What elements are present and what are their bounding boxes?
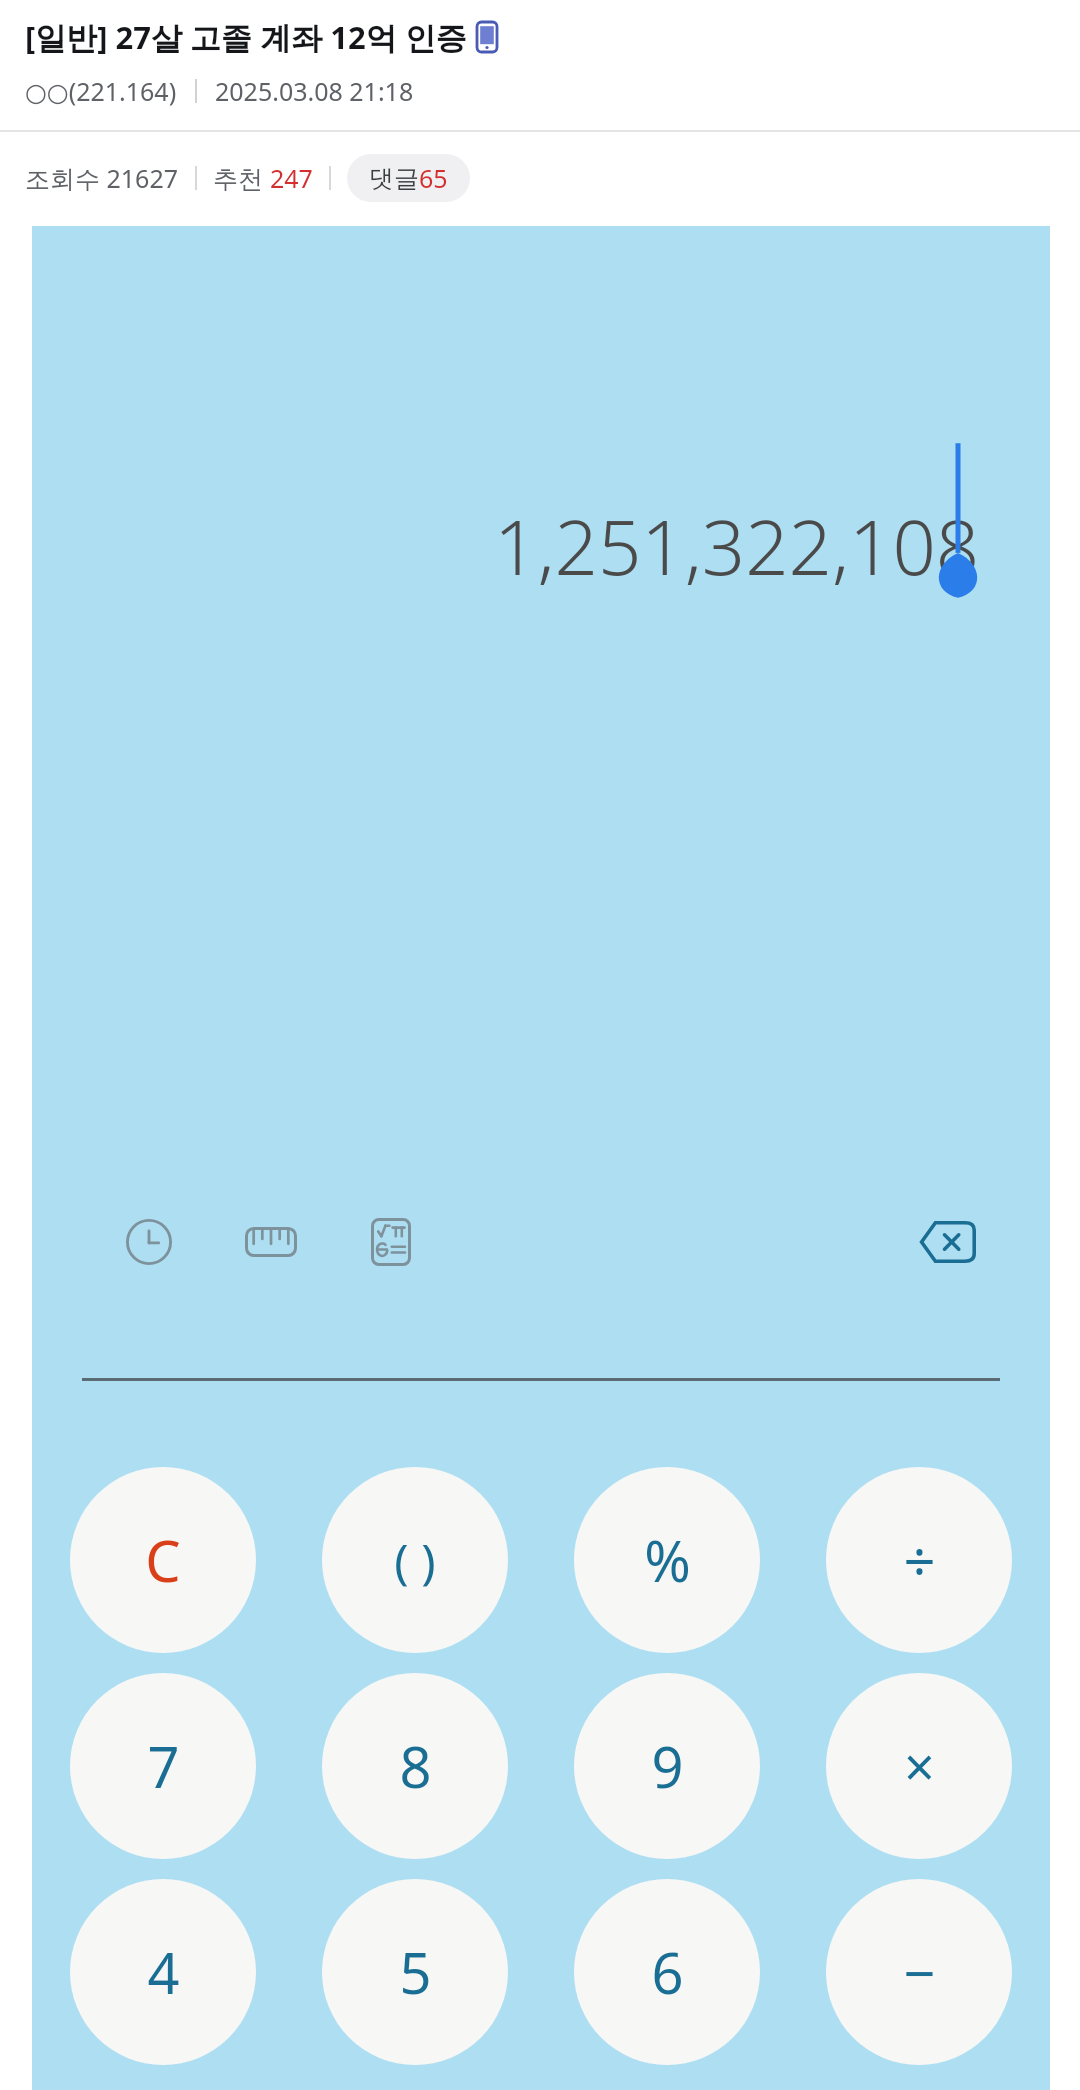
button[interactable]: ÷ [826, 1467, 1012, 1653]
button[interactable]: 6 [574, 1879, 760, 2065]
staticText: 2025.03.08 21:18 [215, 74, 414, 108]
button[interactable]: Formulas [360, 1211, 422, 1273]
staticText: C [145, 1522, 181, 1598]
staticText: 247 [270, 161, 313, 195]
button[interactable]: × [826, 1673, 1012, 1859]
button[interactable]: Backspace [916, 1211, 978, 1273]
staticText: % [644, 1522, 691, 1598]
button[interactable]: 댓글 [347, 154, 470, 202]
button[interactable]: 7 [70, 1673, 256, 1859]
staticText: 8 [399, 1728, 432, 1804]
button[interactable]: 5 [322, 1879, 508, 2065]
staticText: ○○(221.164) [25, 74, 177, 108]
staticText: 1,251,322,108 [494, 494, 980, 598]
staticText: 65 [419, 161, 448, 195]
button[interactable]: C [70, 1467, 256, 1653]
button[interactable]: % [574, 1467, 760, 1653]
staticText: 6 [651, 1934, 684, 2010]
staticText: [일반] 27살 고졸 계좌 12억 인증 [25, 16, 467, 58]
staticText: 4 [147, 1934, 180, 2010]
staticText: 5 [399, 1934, 432, 2010]
staticText: 9 [651, 1728, 684, 1804]
button[interactable]: ( ) [322, 1467, 508, 1653]
staticText: 댓글 [369, 163, 419, 194]
staticText: ( ) [394, 1528, 436, 1593]
staticText: 추천 [213, 161, 270, 195]
button[interactable]: 8 [322, 1673, 508, 1859]
button[interactable]: Unit converter [240, 1211, 302, 1273]
staticText: 7 [147, 1728, 180, 1804]
staticText: × [904, 1729, 935, 1803]
staticText: − [903, 1934, 936, 2010]
button[interactable]: History [118, 1211, 180, 1273]
button[interactable]: 추천 [213, 161, 313, 195]
button[interactable]: − [826, 1879, 1012, 2065]
staticText: ÷ [903, 1522, 936, 1598]
button[interactable]: 4 [70, 1879, 256, 2065]
staticText: 조회수 21627 [25, 161, 179, 195]
button[interactable]: 9 [574, 1673, 760, 1859]
